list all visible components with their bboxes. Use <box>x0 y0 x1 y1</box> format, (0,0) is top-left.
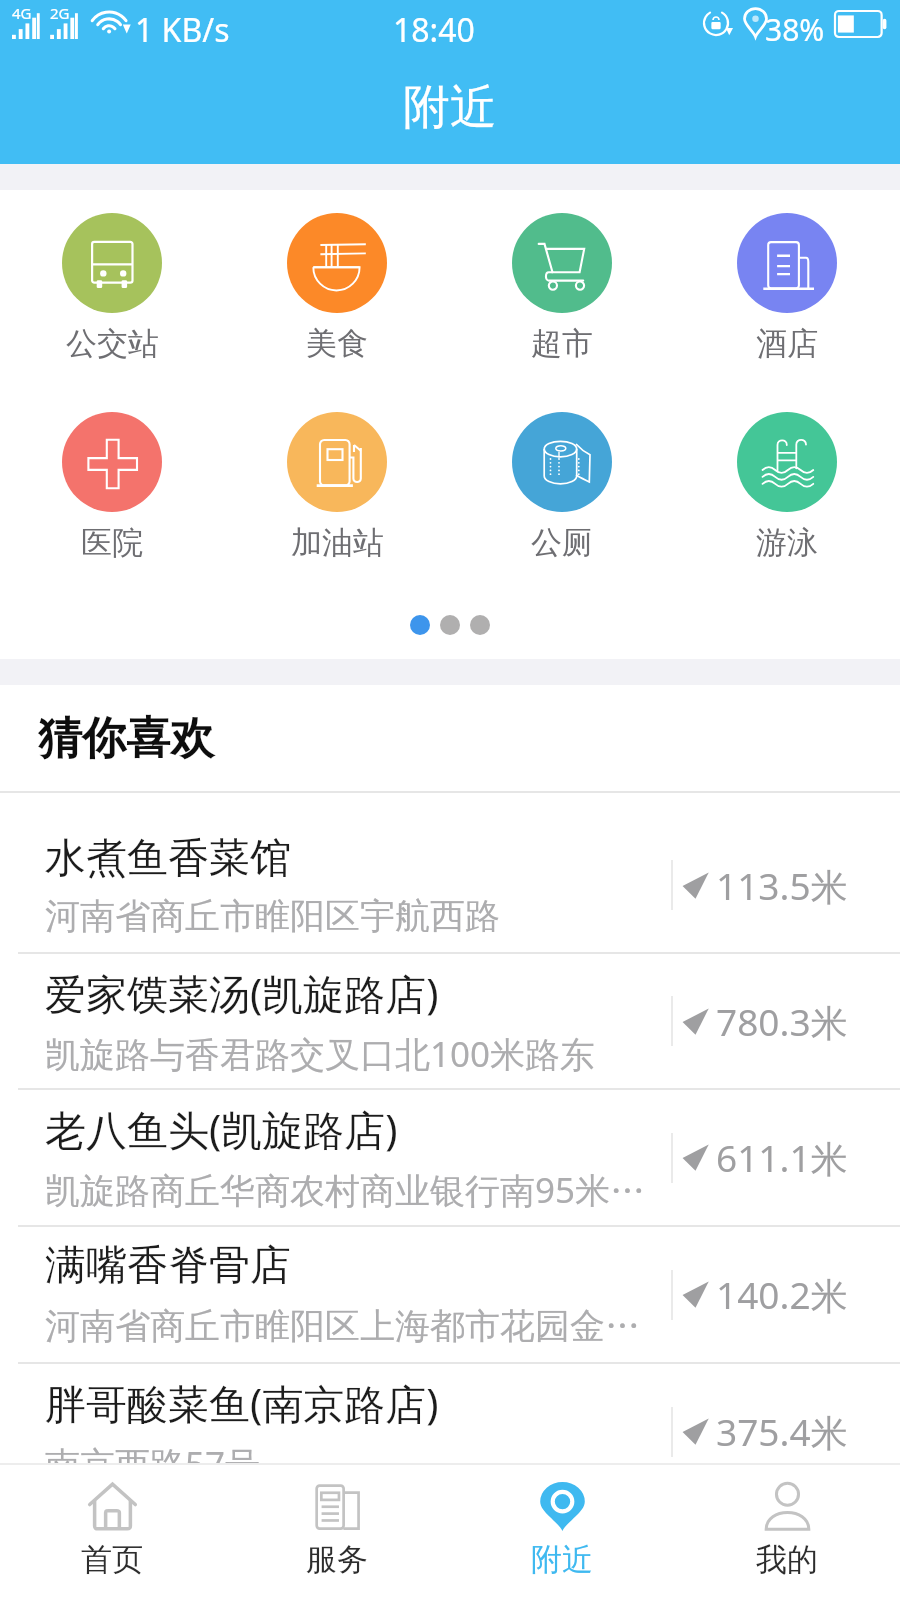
button[interactable]: 首页 <box>42 1465 182 1600</box>
staticText: 38% <box>765 9 825 50</box>
button[interactable]: 爱家馍菜汤(凯旋路店) <box>0 954 900 1090</box>
staticText: 酒店 <box>756 324 818 363</box>
staticText: 公交站 <box>66 324 159 363</box>
staticText: 服务 <box>306 1540 368 1579</box>
button[interactable]: 水煮鱼香菜馆 <box>0 818 900 954</box>
staticText: 公厕 <box>531 523 593 562</box>
staticText: 780.3米 <box>716 996 848 1047</box>
staticText: 凯旋路与香君路交叉口北100米路东 <box>45 1030 596 1078</box>
button[interactable]: 胖哥酸菜鱼(南京路店) <box>0 1364 900 1501</box>
staticText: 2G <box>50 3 70 23</box>
button[interactable]: 服务 <box>267 1465 407 1600</box>
staticText: 河南省商丘市睢阳区宇航西路 <box>45 894 500 938</box>
staticText: 4G <box>12 3 32 23</box>
staticText: 附近 <box>403 78 497 137</box>
staticText: 老八鱼头(凯旋路店) <box>45 1101 398 1157</box>
button[interactable]: 公厕 <box>492 412 632 562</box>
button[interactable]: 美食 <box>267 213 407 363</box>
staticText: 凯旋路商丘华商农村商业银行南95米路... <box>45 1166 666 1214</box>
staticText: 113.5米 <box>716 860 848 911</box>
staticText: 首页 <box>81 1540 143 1579</box>
staticText: 附近 <box>531 1540 593 1579</box>
button[interactable]: 游泳 <box>717 412 857 562</box>
staticText: 猜你喜欢 <box>38 711 214 766</box>
staticText: 我的 <box>756 1540 818 1579</box>
button[interactable]: 老八鱼头(凯旋路店) <box>0 1090 900 1227</box>
staticText: 超市 <box>531 324 593 363</box>
staticText: 140.2米 <box>716 1269 848 1320</box>
button[interactable]: 满嘴香脊骨店 <box>0 1227 900 1364</box>
staticText: 胖哥酸菜鱼(南京路店) <box>45 1375 439 1431</box>
button[interactable]: Page 3 <box>470 615 490 635</box>
button[interactable]: 超市 <box>492 213 632 363</box>
button[interactable]: Page 2 <box>440 615 460 635</box>
staticText: 加油站 <box>291 523 384 562</box>
button[interactable]: 酒店 <box>717 213 857 363</box>
staticText: 美食 <box>306 324 368 363</box>
staticText: 南京西路57号 <box>45 1440 261 1488</box>
button[interactable]: 我的 <box>717 1465 857 1600</box>
staticText: 医院 <box>81 523 143 562</box>
button[interactable]: 加油站 <box>267 412 407 562</box>
button[interactable]: 医院 <box>42 412 182 562</box>
button[interactable]: 附近 <box>492 1465 632 1600</box>
button[interactable]: Page 1 <box>410 615 430 635</box>
staticText: 1 KB/s <box>135 8 230 52</box>
staticText: 18:40 <box>393 8 475 52</box>
staticText: 河南省商丘市睢阳区上海都市花园金街... <box>45 1301 666 1349</box>
staticText: 游泳 <box>756 523 818 562</box>
staticText: 611.1米 <box>716 1132 848 1183</box>
button[interactable]: 公交站 <box>42 213 182 363</box>
staticText: 满嘴香脊骨店 <box>45 1240 291 1292</box>
staticText: 375.4米 <box>716 1406 848 1457</box>
staticText: 水煮鱼香菜馆 <box>45 833 291 885</box>
staticText: 爱家馍菜汤(凯旋路店) <box>45 965 439 1021</box>
